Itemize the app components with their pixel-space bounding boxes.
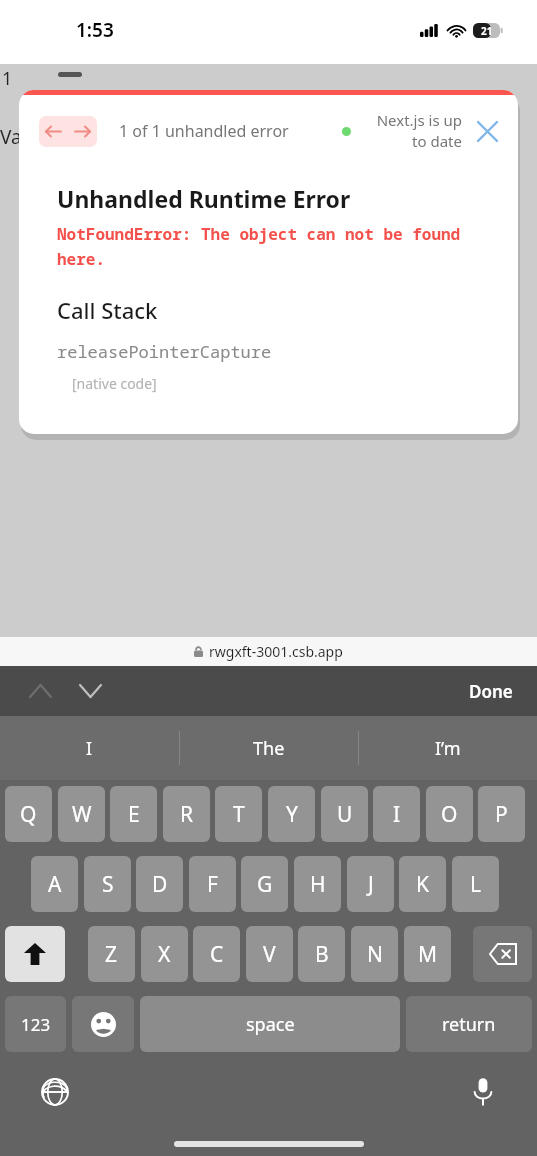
staticText: [native code] [72, 374, 157, 393]
button[interactable]: O [426, 786, 473, 842]
staticText: S [102, 870, 114, 899]
staticText: D [152, 870, 168, 899]
button[interactable]: Previous field [22, 673, 58, 709]
staticText: 1 of 1 unhandled error [119, 120, 289, 142]
button[interactable]: A [31, 856, 78, 912]
staticText: 1 [2, 66, 13, 91]
staticText: Q [20, 800, 37, 829]
button[interactable]: K [399, 856, 446, 912]
staticText: The [253, 736, 285, 761]
button[interactable]: 123 [5, 996, 66, 1052]
button[interactable]: releasePointerCapture [57, 340, 272, 363]
button[interactable]: X [141, 926, 188, 982]
button[interactable]: N [351, 926, 398, 982]
button[interactable]: Shift [5, 926, 65, 982]
staticText: Unhandled Runtime Error [57, 183, 351, 214]
button[interactable]: M [404, 926, 451, 982]
staticText: T [233, 800, 245, 829]
button[interactable]: Z [88, 926, 135, 982]
staticText: J [368, 870, 374, 899]
staticText: NotFoundError: The object can not be fou… [57, 223, 461, 269]
staticText: K [416, 870, 429, 899]
button[interactable]: F [189, 856, 236, 912]
button[interactable]: U [321, 786, 368, 842]
button[interactable]: return [406, 996, 532, 1052]
staticText: return [442, 1012, 496, 1037]
button[interactable]: I [373, 786, 420, 842]
staticText: U [337, 800, 353, 829]
staticText: H [310, 870, 326, 899]
staticText: X [158, 940, 171, 969]
button[interactable]: P [478, 786, 525, 842]
button[interactable]: rwgxft-3001.csb.app [0, 637, 537, 666]
staticText: rwgxft-3001.csb.app [209, 642, 343, 661]
staticText: 1:53 [76, 17, 114, 43]
staticText: L [470, 870, 482, 899]
button[interactable]: I [0, 716, 179, 780]
button[interactable]: Y [268, 786, 315, 842]
button[interactable]: G [241, 856, 288, 912]
staticText: I’m [435, 736, 461, 761]
staticText: I [86, 736, 93, 761]
staticText: Call Stack [57, 295, 158, 325]
button[interactable]: Backspace [473, 926, 532, 982]
button[interactable]: L [452, 856, 499, 912]
button[interactable]: Switch keyboard [33, 1070, 77, 1114]
staticText: 123 [21, 1013, 51, 1036]
button[interactable]: W [58, 786, 105, 842]
button[interactable]: Next error [68, 116, 97, 147]
staticText: O [441, 800, 458, 829]
button[interactable]: I’m [359, 716, 537, 780]
staticText: W [72, 800, 92, 829]
staticText: E [128, 800, 140, 829]
button[interactable]: Emoji [72, 996, 134, 1052]
staticText: Va [0, 124, 22, 150]
staticText: Z [105, 940, 118, 969]
staticText: A [48, 870, 62, 899]
staticText: Y [286, 800, 298, 829]
button[interactable]: H [294, 856, 341, 912]
staticText: G [257, 870, 273, 899]
button[interactable]: D [136, 856, 183, 912]
button[interactable]: Done [463, 674, 519, 709]
staticText: 21 [481, 24, 493, 38]
button[interactable]: E [110, 786, 157, 842]
button[interactable]: T [215, 786, 262, 842]
button[interactable]: J [347, 856, 394, 912]
staticText: space [246, 1012, 295, 1037]
button[interactable]: Dictation [461, 1070, 505, 1114]
button[interactable]: S [84, 856, 131, 912]
button[interactable]: Q [5, 786, 52, 842]
button[interactable]: B [298, 926, 345, 982]
button[interactable]: Next field [72, 673, 108, 709]
button[interactable]: Close [470, 114, 504, 148]
button[interactable]: C [193, 926, 240, 982]
staticText: M [418, 940, 438, 969]
button[interactable]: V [246, 926, 293, 982]
button[interactable]: The [180, 716, 358, 780]
staticText: B [315, 940, 329, 969]
staticText: V [263, 940, 276, 969]
staticText: F [207, 870, 218, 899]
staticText: C [210, 940, 224, 969]
staticText: Next.js is up to date [358, 110, 462, 152]
staticText: P [495, 800, 508, 829]
staticText: Done [469, 680, 513, 703]
button[interactable]: R [163, 786, 210, 842]
button[interactable]: space [140, 996, 400, 1052]
staticText: N [367, 940, 383, 969]
button[interactable]: Previous error [39, 116, 68, 147]
staticText: I [393, 800, 401, 829]
staticText: R [180, 800, 194, 829]
